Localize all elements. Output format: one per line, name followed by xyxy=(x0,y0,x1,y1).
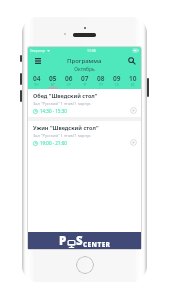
staticText: Ужин "Шведский стол" xyxy=(33,124,99,131)
staticText: ПТ xyxy=(99,83,103,87)
staticText: 08 xyxy=(97,74,105,83)
button[interactable]: Menu xyxy=(33,56,43,66)
staticText: 11:06 xyxy=(87,48,96,53)
button[interactable]: Search xyxy=(127,56,137,66)
button[interactable]: 06 xyxy=(61,73,77,89)
staticText: Зал "Русский" 1 этаж/1 корпус xyxy=(33,133,91,138)
button[interactable]: Обед "Шведский стол" xyxy=(28,89,141,117)
button[interactable]: Add to schedule xyxy=(130,139,137,146)
button[interactable]: Home xyxy=(76,256,94,274)
button[interactable]: Ужин "Шведский стол" xyxy=(28,121,141,149)
staticText: 19:00 - 21:00 xyxy=(40,140,67,146)
button[interactable]: Add to schedule xyxy=(130,107,137,114)
staticText: СБ xyxy=(115,83,119,87)
staticText: Зал "Русский" 1 этаж/1 корпус xyxy=(33,101,91,106)
staticText: Программа xyxy=(67,57,102,65)
staticText: 09 xyxy=(113,74,121,83)
staticText: ВС xyxy=(131,83,135,87)
button[interactable]: 08 xyxy=(93,73,109,89)
staticText: S xyxy=(76,233,83,249)
staticText: ЧТ xyxy=(83,83,87,87)
staticText: CENTER xyxy=(83,240,111,249)
staticText: P xyxy=(59,233,67,249)
staticText: 10 xyxy=(129,74,137,83)
staticText: 04 xyxy=(33,74,41,83)
staticText: 14:30 - 15:30 xyxy=(40,108,67,114)
staticText: ВТ xyxy=(51,83,55,87)
button[interactable]: 05 xyxy=(45,73,61,89)
staticText: 06 xyxy=(65,74,73,83)
button[interactable]: 09 xyxy=(109,73,125,89)
staticText: СР xyxy=(67,83,71,87)
button[interactable]: 07 xyxy=(77,73,93,89)
staticText: 05 xyxy=(49,74,57,83)
staticText: Обед "Шведский стол" xyxy=(33,92,98,99)
staticText: Октябрь xyxy=(28,66,141,73)
staticText: Оператор xyxy=(30,49,46,53)
staticText: ПН xyxy=(34,83,39,87)
button[interactable]: 10 xyxy=(125,73,141,89)
staticText: 07 xyxy=(81,74,89,83)
button[interactable]: 04 xyxy=(28,73,45,89)
